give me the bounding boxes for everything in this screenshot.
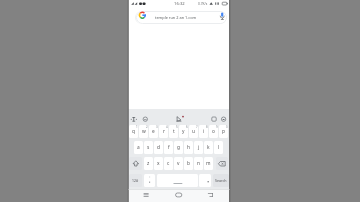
- staticText: l: [218, 144, 220, 151]
- staticText: 6: [186, 125, 188, 129]
- button[interactable]: j: [194, 141, 203, 154]
- button[interactable]: n: [194, 157, 203, 170]
- button[interactable]: b: [184, 157, 193, 170]
- staticText: f: [168, 144, 170, 151]
- button[interactable]: [172, 190, 184, 202]
- staticText: Search: [215, 178, 227, 183]
- button[interactable]: y: [179, 125, 188, 138]
- button[interactable]: p: [219, 125, 228, 138]
- staticText: s: [147, 144, 150, 151]
- staticText: z: [147, 160, 150, 167]
- staticText: q: [132, 128, 135, 135]
- button[interactable]: m: [204, 157, 213, 170]
- button[interactable]: [175, 115, 184, 124]
- button[interactable]: k: [204, 141, 213, 154]
- staticText: w: [142, 128, 146, 135]
- staticText: c: [167, 160, 170, 167]
- staticText: e: [152, 128, 155, 135]
- button[interactable]: r: [159, 125, 168, 138]
- button[interactable]: h: [184, 141, 193, 154]
- button[interactable]: [141, 115, 150, 124]
- button[interactable]: [140, 190, 152, 202]
- staticText: r: [163, 128, 165, 135]
- staticText: g: [177, 144, 180, 151]
- staticText: n: [197, 160, 200, 167]
- staticText: v: [177, 160, 180, 167]
- button[interactable]: 12#: [129, 174, 142, 187]
- button[interactable]: c: [164, 157, 173, 170]
- button[interactable]: q: [129, 125, 138, 138]
- button[interactable]: l: [214, 141, 223, 154]
- staticText: j: [198, 144, 200, 151]
- button[interactable]: Search: [213, 174, 229, 187]
- staticText: p: [222, 128, 225, 135]
- button[interactable]: s: [144, 141, 153, 154]
- staticText: h: [187, 144, 190, 151]
- button[interactable]: i: [199, 125, 208, 138]
- staticText: 7: [196, 125, 198, 129]
- staticText: a: [137, 144, 140, 151]
- button[interactable]: [157, 174, 198, 187]
- button[interactable]: [129, 157, 142, 170]
- button[interactable]: x: [154, 157, 163, 170]
- staticText: u: [192, 128, 195, 135]
- staticText: y: [182, 128, 185, 135]
- staticText: o: [212, 128, 215, 135]
- staticText: m: [206, 160, 211, 167]
- staticText: temple run 2 an 1.com: [155, 15, 197, 20]
- staticText: 16:32: [174, 1, 185, 7]
- button[interactable]: a: [134, 141, 143, 154]
- button[interactable]: o: [209, 125, 218, 138]
- button[interactable]: [210, 115, 219, 124]
- staticText: 2: [146, 125, 148, 129]
- button[interactable]: [199, 174, 211, 187]
- button[interactable]: f: [164, 141, 173, 154]
- staticText: 8: [206, 125, 208, 129]
- button[interactable]: t: [169, 125, 178, 138]
- staticText: 0.7K/s: [198, 2, 208, 6]
- staticText: b: [187, 160, 190, 167]
- button[interactable]: [144, 174, 155, 187]
- staticText: t: [173, 128, 175, 135]
- button[interactable]: [217, 11, 227, 23]
- staticText: k: [207, 144, 210, 151]
- button[interactable]: [136, 11, 227, 24]
- staticText: 4: [166, 125, 168, 129]
- button[interactable]: v: [174, 157, 183, 170]
- staticText: 0: [226, 125, 228, 129]
- button[interactable]: u: [189, 125, 198, 138]
- button[interactable]: g: [174, 141, 183, 154]
- button[interactable]: w: [139, 125, 148, 138]
- button[interactable]: e: [149, 125, 158, 138]
- button[interactable]: [216, 157, 228, 170]
- staticText: d: [157, 144, 160, 151]
- button[interactable]: z: [144, 157, 153, 170]
- button[interactable]: [219, 115, 228, 124]
- staticText: 9: [216, 125, 218, 129]
- staticText: 5: [176, 125, 178, 129]
- staticText: 1: [136, 125, 138, 129]
- button[interactable]: [131, 115, 140, 124]
- staticText: 12#: [132, 178, 139, 183]
- button[interactable]: [204, 190, 216, 202]
- staticText: x: [157, 160, 160, 167]
- staticText: 3: [156, 125, 158, 129]
- button[interactable]: d: [154, 141, 163, 154]
- staticText: i: [203, 128, 205, 135]
